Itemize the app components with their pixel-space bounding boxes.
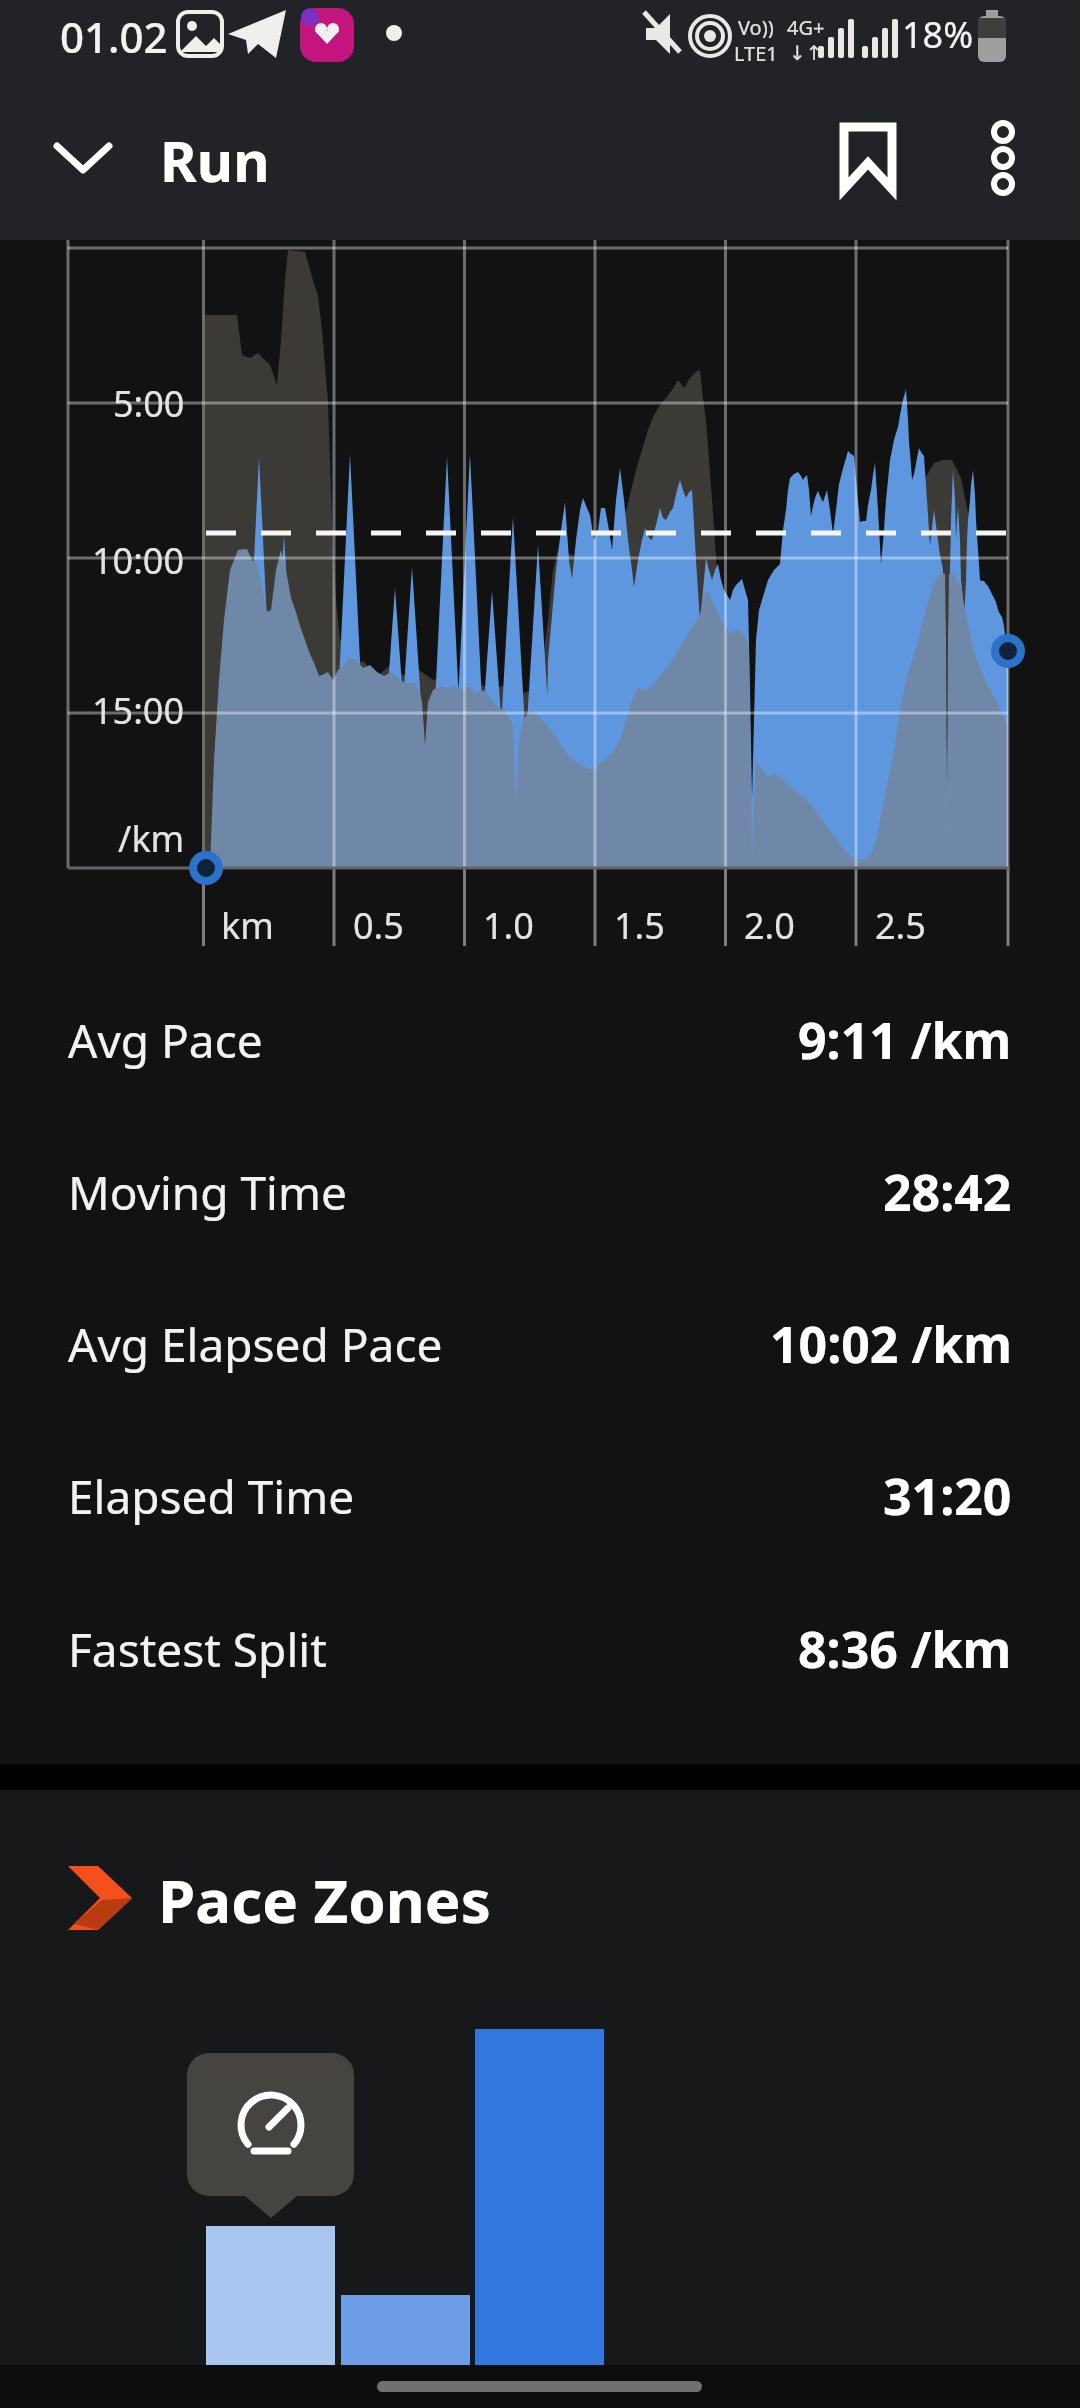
staticText: /km	[118, 814, 185, 863]
staticText: Fastest Split	[68, 1618, 327, 1681]
staticText: 2.5	[875, 901, 926, 950]
staticText: 8:36 /km	[798, 1615, 1012, 1683]
button[interactable]: Avg Elapsed Pace	[0, 1268, 1080, 1420]
staticText: 0.5	[353, 901, 404, 950]
staticText: Moving Time	[68, 1161, 347, 1224]
staticText: Vo))	[738, 14, 774, 38]
staticText: 18%	[902, 10, 974, 59]
staticText: Pace Zones	[158, 1859, 491, 1941]
staticText: 10:02 /km	[770, 1310, 1012, 1378]
staticText: 2.0	[744, 901, 795, 950]
button[interactable]	[955, 108, 1050, 208]
staticText: 28:42	[883, 1158, 1012, 1226]
staticText: 1.0	[483, 901, 534, 950]
button[interactable]: Fastest Split	[0, 1573, 1080, 1725]
staticText: 01.02	[60, 8, 168, 60]
staticText: 31:20	[883, 1462, 1012, 1530]
button[interactable]: Pace Zones	[0, 1845, 1080, 1955]
staticText: Avg Pace	[68, 1009, 263, 1072]
staticText: 9:11 /km	[798, 1006, 1012, 1074]
staticText: ↓↑	[789, 41, 823, 64]
button[interactable]: Elapsed Time	[0, 1420, 1080, 1572]
button[interactable]	[187, 2053, 354, 2196]
staticText: Elapsed Time	[68, 1465, 355, 1528]
staticText: 15:00	[92, 686, 185, 735]
button[interactable]	[40, 115, 130, 205]
button[interactable]	[815, 108, 920, 208]
staticText: 4G+	[787, 14, 825, 38]
staticText: 5:00	[113, 379, 185, 428]
button[interactable]: Avg Pace	[0, 964, 1080, 1116]
staticText: Avg Elapsed Pace	[68, 1313, 443, 1376]
staticText: km	[221, 901, 274, 950]
staticText: Run	[160, 122, 270, 198]
staticText: 1.5	[614, 901, 665, 950]
button[interactable]: Moving Time	[0, 1116, 1080, 1268]
staticText: 10:00	[92, 536, 185, 585]
staticText: LTE1	[734, 40, 778, 64]
